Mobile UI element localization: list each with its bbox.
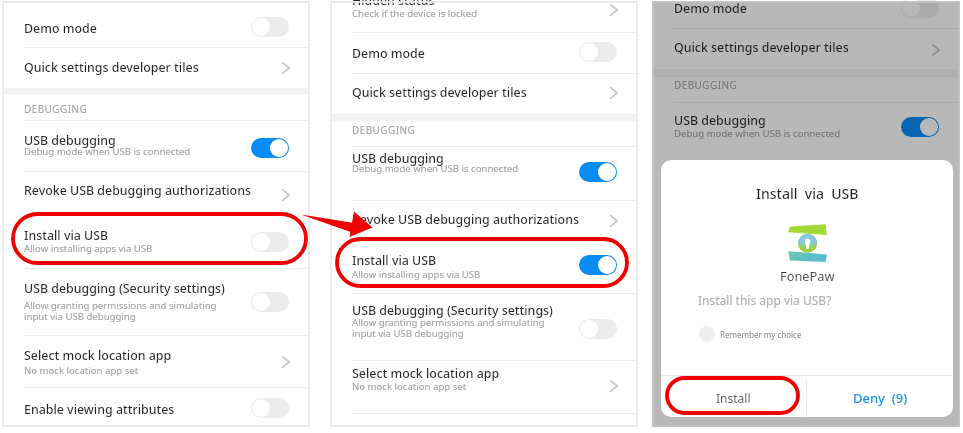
button[interactable]: Switch on xyxy=(901,117,939,137)
button[interactable]: Quick settings developer tiles xyxy=(3,48,309,88)
button[interactable]: Revoke USB debugging authorizations xyxy=(3,172,309,214)
staticText: DEBUGGING xyxy=(24,102,88,116)
button[interactable]: Demo mode xyxy=(331,33,637,73)
other: Open xyxy=(282,62,290,74)
staticText: Select mock location app xyxy=(352,365,500,382)
staticText: USB debugging (Security settings) xyxy=(352,302,553,319)
staticText: Allow granting permissions and simulatin… xyxy=(352,316,545,329)
staticText: Install via USB xyxy=(24,227,109,244)
staticText: input via USB debugging xyxy=(352,327,464,340)
other: Open xyxy=(610,87,618,99)
button[interactable]: Demo mode xyxy=(653,0,959,28)
staticText: Select mock location app xyxy=(24,347,172,364)
button[interactable]: Select mock location app xyxy=(331,361,637,416)
staticText: USB debugging xyxy=(674,112,766,129)
button[interactable]: Revoke USB debugging authorizations xyxy=(331,201,637,243)
button[interactable]: Hidden status xyxy=(331,0,637,32)
staticText: input via USB debugging xyxy=(24,310,136,323)
staticText: Deny (9) xyxy=(853,389,908,407)
staticText: Install via USB xyxy=(756,184,859,203)
button[interactable]: Demo mode xyxy=(3,6,309,48)
button[interactable]: USB debugging xyxy=(653,103,959,158)
button[interactable]: Switch off xyxy=(579,319,617,339)
button[interactable]: Switch on xyxy=(579,255,617,275)
button[interactable]: Switch off xyxy=(251,17,289,37)
button[interactable]: Enable viewing attributes xyxy=(3,388,309,426)
staticText: Debug mode when USB is connected xyxy=(674,127,841,140)
staticText: Install xyxy=(716,390,751,406)
staticText: Allow installing apps via USB xyxy=(24,242,153,255)
button[interactable]: Select mock location app xyxy=(3,336,309,387)
staticText: Allow installing apps via USB xyxy=(352,268,481,281)
staticText: Quick settings developer tiles xyxy=(674,39,849,56)
button[interactable]: Switch on xyxy=(579,162,617,182)
button[interactable]: Deny (9) xyxy=(807,379,953,417)
button[interactable]: Switch off xyxy=(579,42,617,62)
button[interactable]: Switch off xyxy=(901,0,939,18)
other: Open xyxy=(282,356,290,368)
staticText: Demo mode xyxy=(674,0,747,17)
staticText: Revoke USB debugging authorizations xyxy=(352,211,579,228)
staticText: Demo mode xyxy=(352,45,425,62)
staticText: Check if the device is locked xyxy=(352,7,478,20)
staticText: Enable viewing attributes xyxy=(24,401,175,418)
staticText: USB debugging (Security settings) xyxy=(24,280,225,297)
other: Open xyxy=(610,380,618,392)
staticText: Debug mode when USB is connected xyxy=(352,162,519,175)
staticText: Quick settings developer tiles xyxy=(24,59,199,76)
button[interactable]: Switch off xyxy=(251,398,289,418)
button[interactable]: USB debugging (Security settings) xyxy=(331,294,637,360)
staticText: Revoke USB debugging authorizations xyxy=(24,182,251,199)
staticText: FonePaw xyxy=(780,267,835,284)
staticText: Install this app via USB? xyxy=(698,292,832,308)
button[interactable]: Install xyxy=(661,379,806,417)
other: Open xyxy=(932,44,940,56)
button[interactable]: Switch off xyxy=(251,292,289,312)
other: Open xyxy=(610,4,618,16)
staticText: DEBUGGING xyxy=(352,123,416,137)
staticText: Debug mode when USB is connected xyxy=(24,145,191,158)
button[interactable]: USB debugging xyxy=(331,147,637,200)
button[interactable]: Quick settings developer tiles xyxy=(653,29,959,69)
staticText: No mock location app set xyxy=(352,380,467,393)
staticText: Install via USB xyxy=(352,252,437,269)
button[interactable]: Install via USB xyxy=(3,214,309,268)
button[interactable]: Remember my choice xyxy=(699,326,802,342)
staticText: Allow granting permissions and simulatin… xyxy=(24,299,217,312)
button[interactable]: Quick settings developer tiles xyxy=(331,74,637,113)
button[interactable]: USB debugging (Security settings) xyxy=(3,269,309,335)
staticText: USB debugging xyxy=(24,132,116,149)
staticText: Quick settings developer tiles xyxy=(352,84,527,101)
button[interactable]: USB debugging xyxy=(3,121,309,171)
staticText: No mock location app set xyxy=(24,364,139,377)
other: Open xyxy=(282,189,290,201)
button[interactable]: Switch off xyxy=(251,232,289,252)
staticText: USB debugging xyxy=(352,150,444,167)
staticText: Demo mode xyxy=(24,20,97,37)
other: Open xyxy=(610,215,618,227)
staticText: Hidden status xyxy=(352,0,435,9)
button[interactable]: Switch on xyxy=(251,138,289,158)
staticText: Remember my choice xyxy=(720,329,802,340)
button[interactable]: Install via USB xyxy=(331,243,637,293)
staticText: DEBUGGING xyxy=(674,78,738,92)
